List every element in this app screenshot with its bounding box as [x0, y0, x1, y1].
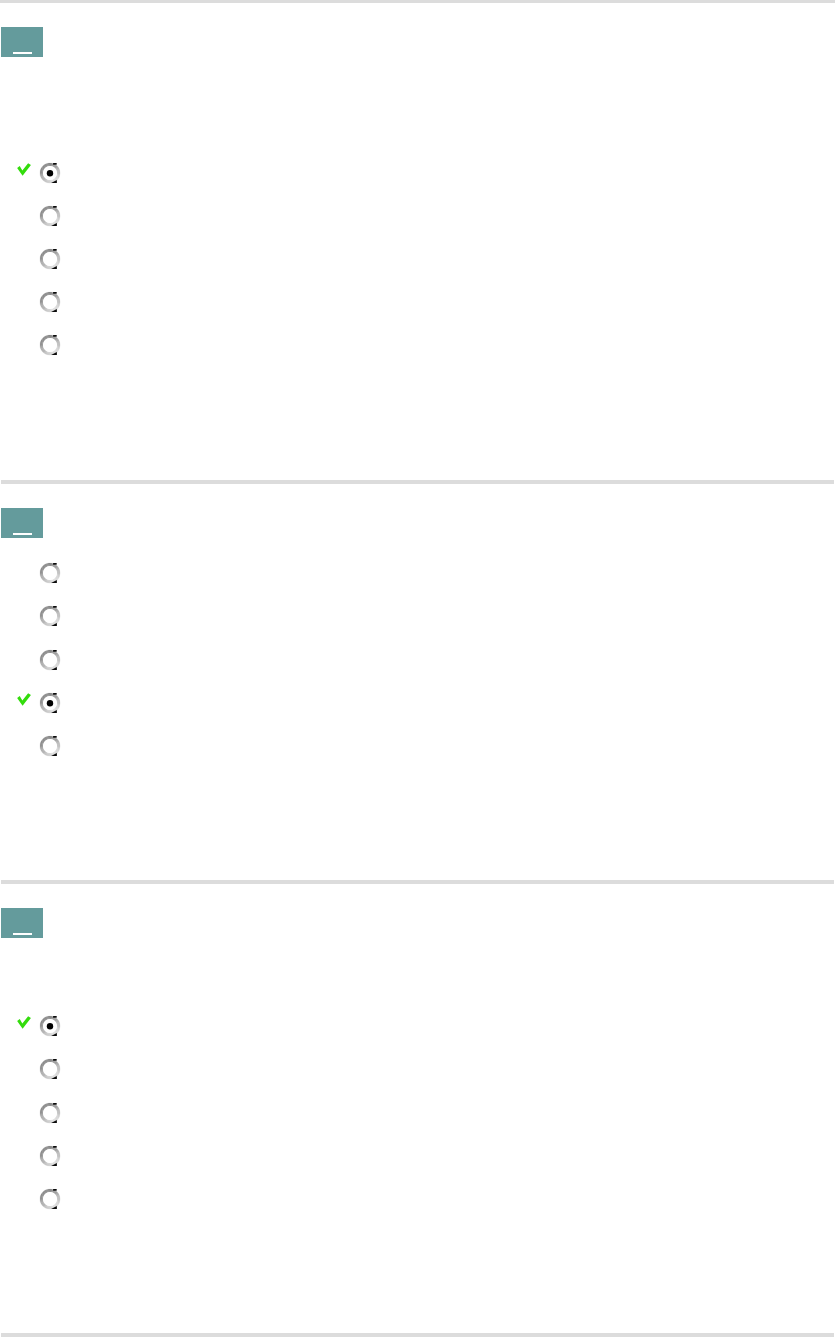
- button[interactable]: Question illustration: [1, 508, 43, 538]
- button[interactable]: Answer option: [0, 1177, 835, 1220]
- button[interactable]: Answer option: [0, 194, 835, 237]
- button[interactable]: Answer option: [0, 280, 835, 323]
- button[interactable]: Answer option: [0, 323, 835, 366]
- button[interactable]: Answer option: [0, 1134, 835, 1177]
- button[interactable]: Selected answer: [0, 681, 835, 724]
- button[interactable]: Question illustration: [1, 27, 43, 57]
- button[interactable]: Selected answer: [0, 1004, 835, 1047]
- button[interactable]: Answer option: [0, 551, 835, 594]
- button[interactable]: Answer option: [0, 1091, 835, 1134]
- button[interactable]: Answer option: [0, 594, 835, 637]
- button[interactable]: Answer option: [0, 724, 835, 767]
- button[interactable]: Answer option: [0, 638, 835, 681]
- button[interactable]: Question illustration: [1, 908, 43, 938]
- button[interactable]: Answer option: [0, 1047, 835, 1090]
- button[interactable]: Selected answer: [0, 151, 835, 194]
- button[interactable]: Answer option: [0, 237, 835, 280]
